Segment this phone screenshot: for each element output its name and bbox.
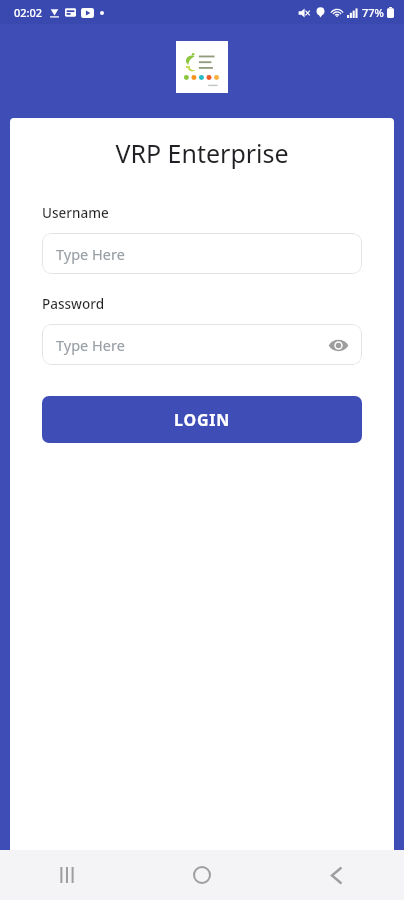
staticText: Password (42, 295, 105, 313)
button[interactable]: Type Here (42, 324, 362, 365)
staticText: 02:02 (14, 5, 43, 20)
button[interactable]: Type Here (42, 233, 362, 274)
button[interactable]: Show password (324, 331, 352, 359)
staticText: Type Here (56, 335, 125, 355)
button[interactable]: LOGIN (42, 396, 362, 443)
staticText: Type Here (56, 244, 125, 264)
staticText: Username (42, 204, 109, 222)
button[interactable]: Back (269, 850, 404, 900)
staticText: 77% (362, 5, 384, 20)
staticText: VRP Enterprise (10, 136, 394, 170)
staticText: LOGIN (174, 409, 231, 431)
button[interactable]: Home (134, 850, 269, 900)
button[interactable]: Recent apps (0, 850, 134, 900)
